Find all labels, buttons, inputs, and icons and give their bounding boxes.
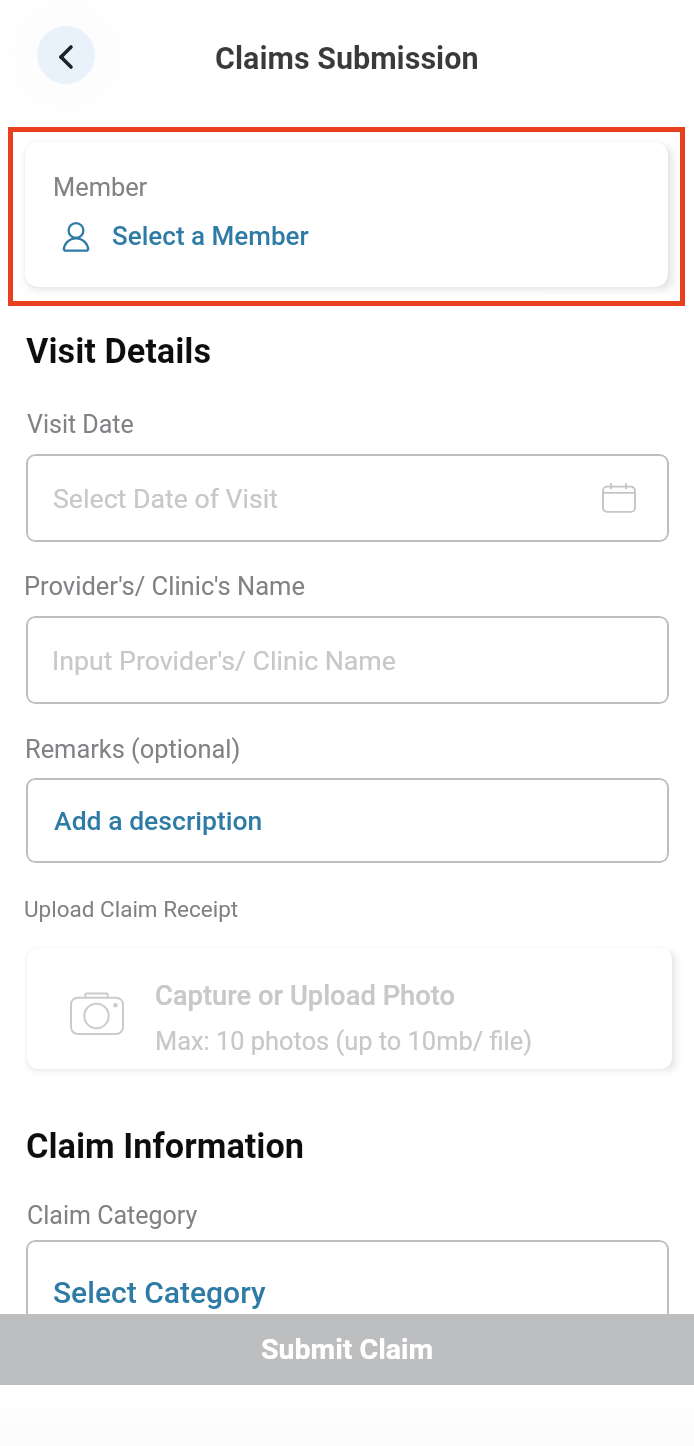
staticText: Member — [53, 172, 148, 202]
button[interactable]: Back — [26, 15, 106, 95]
staticText: Visit Details — [26, 331, 212, 371]
staticText: Select Category — [53, 1275, 266, 1310]
staticText: Capture or Upload Photo — [155, 980, 456, 1012]
staticText: Remarks (optional) — [25, 734, 241, 764]
button[interactable]: Input Provider's/ Clinic Name — [26, 616, 669, 704]
button[interactable]: Member — [25, 142, 668, 287]
staticText: Submit Claim — [261, 1333, 434, 1366]
staticText: Add a description — [54, 805, 263, 836]
staticText: Select Date of Visit — [53, 483, 279, 514]
button[interactable]: Select Category — [26, 1240, 669, 1328]
button[interactable]: Submit Claim — [0, 1314, 694, 1385]
staticText: Provider's/ Clinic's Name — [24, 571, 305, 601]
staticText: Visit Date — [27, 410, 134, 439]
staticText: Claims Submission — [215, 41, 479, 77]
staticText: Input Provider's/ Clinic Name — [52, 645, 396, 676]
staticText: Claim Category — [27, 1201, 198, 1230]
staticText: Upload Claim Receipt — [24, 896, 239, 922]
staticText: Claim Information — [26, 1126, 305, 1166]
button[interactable]: Add a description — [26, 778, 669, 863]
button[interactable]: Capture or Upload Photo — [27, 948, 672, 1069]
staticText: Max: 10 photos (up to 10mb/ file) — [155, 1026, 532, 1056]
button[interactable]: Select Date of Visit — [26, 454, 669, 542]
staticText: Select a Member — [112, 221, 309, 251]
